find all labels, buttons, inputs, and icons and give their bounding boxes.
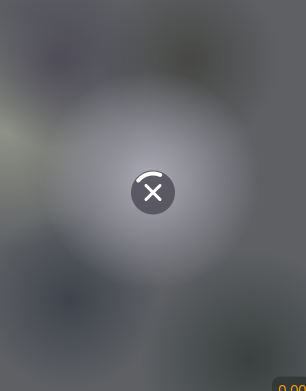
button[interactable]: Cancel bbox=[131, 170, 175, 214]
staticText: 0.00 bbox=[278, 379, 306, 391]
